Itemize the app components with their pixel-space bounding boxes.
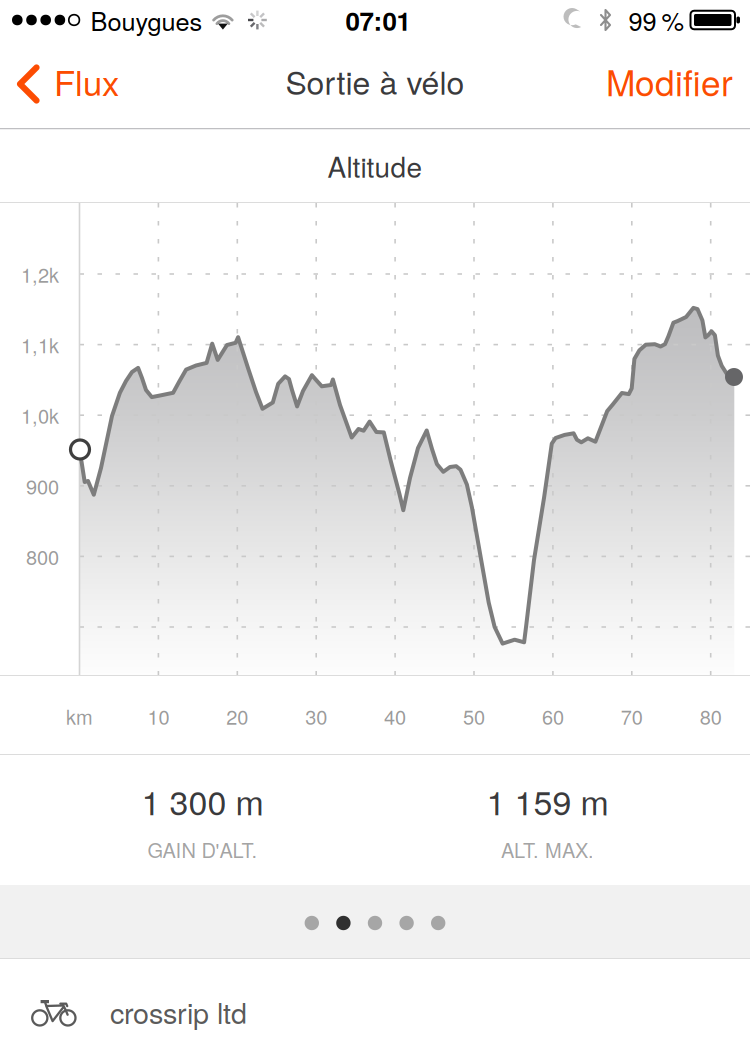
staticText: Altitude [327,146,422,186]
staticText: crossrip ltd [110,991,247,1032]
staticText: 1,1k [21,330,59,359]
staticText: Flux [54,56,119,106]
staticText: 60 [542,702,564,730]
staticText: Bouygues [90,2,202,38]
staticText: 70 [621,702,643,730]
staticText: 30 [305,702,327,730]
staticText: GAIN D'ALT. [147,835,257,864]
staticText: 1,2k [21,260,59,288]
button[interactable]: Flux [0,40,139,128]
staticText: Sortie à vélo [285,58,464,104]
staticText: 50 [463,702,485,730]
staticText: Modifier [606,56,733,106]
staticText: 1,0k [21,401,59,429]
staticText: 40 [384,702,406,730]
staticText: 1 159 m [486,776,608,825]
staticText: 1 300 m [141,776,263,825]
staticText: ALT. MAX. [501,835,594,864]
staticText: 900 [26,471,59,500]
staticText: 20 [226,702,248,730]
button[interactable]: crossrip ltd [0,959,750,1054]
staticText: 800 [26,542,59,571]
staticText: 07:01 [345,1,410,39]
button[interactable]: Modifier [586,40,750,128]
staticText: 80 [700,702,722,730]
staticText: 99 % [628,2,684,38]
staticText: 10 [147,702,169,730]
staticText: km [66,702,93,730]
